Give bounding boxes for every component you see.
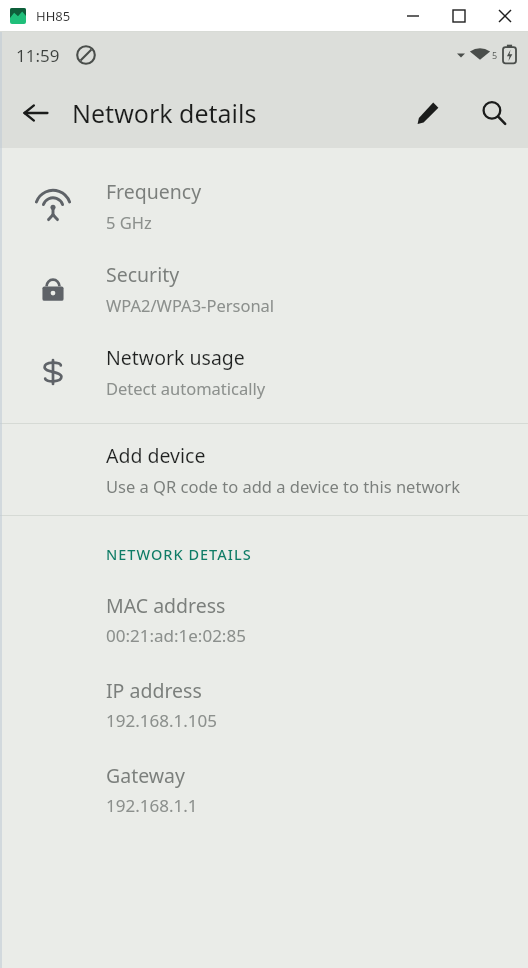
staticText: Add device (106, 442, 206, 469)
staticText: 192.168.1.105 (106, 709, 217, 732)
button[interactable]: IP address (0, 677, 528, 732)
button[interactable]: Network usage (0, 330, 528, 413)
staticText: IP address (106, 677, 202, 704)
staticText: Gateway (106, 762, 185, 789)
staticText: HH85 (36, 7, 71, 25)
staticText: 11:59 (16, 44, 60, 67)
staticText: Detect automatically (106, 377, 266, 399)
button[interactable]: Gateway (0, 762, 528, 817)
button[interactable]: Frequency (0, 164, 528, 247)
staticText: Security (106, 261, 180, 288)
staticText: Use a QR code to add a device to this ne… (106, 475, 460, 497)
button[interactable]: Maximize (436, 0, 482, 32)
staticText: Network usage (106, 344, 245, 371)
staticText: 5 GHz (106, 211, 152, 233)
button[interactable]: Add device (0, 442, 528, 497)
staticText: Network details (72, 96, 257, 130)
staticText: 5 (492, 49, 498, 61)
button[interactable]: Minimize (390, 0, 436, 32)
button[interactable]: Back (0, 78, 72, 148)
button[interactable]: Close (482, 0, 528, 32)
button[interactable]: Edit (396, 78, 460, 148)
button[interactable]: Security (0, 247, 528, 330)
staticText: 00:21:ad:1e:02:85 (106, 624, 246, 647)
staticText: Frequency (106, 178, 202, 205)
button[interactable]: MAC address (0, 592, 528, 647)
staticText: WPA2/WPA3-Personal (106, 294, 275, 316)
staticText: MAC address (106, 592, 226, 619)
button[interactable]: Search (460, 78, 528, 148)
staticText: NETWORK DETAILS (106, 544, 252, 564)
staticText: 192.168.1.1 (106, 794, 198, 817)
